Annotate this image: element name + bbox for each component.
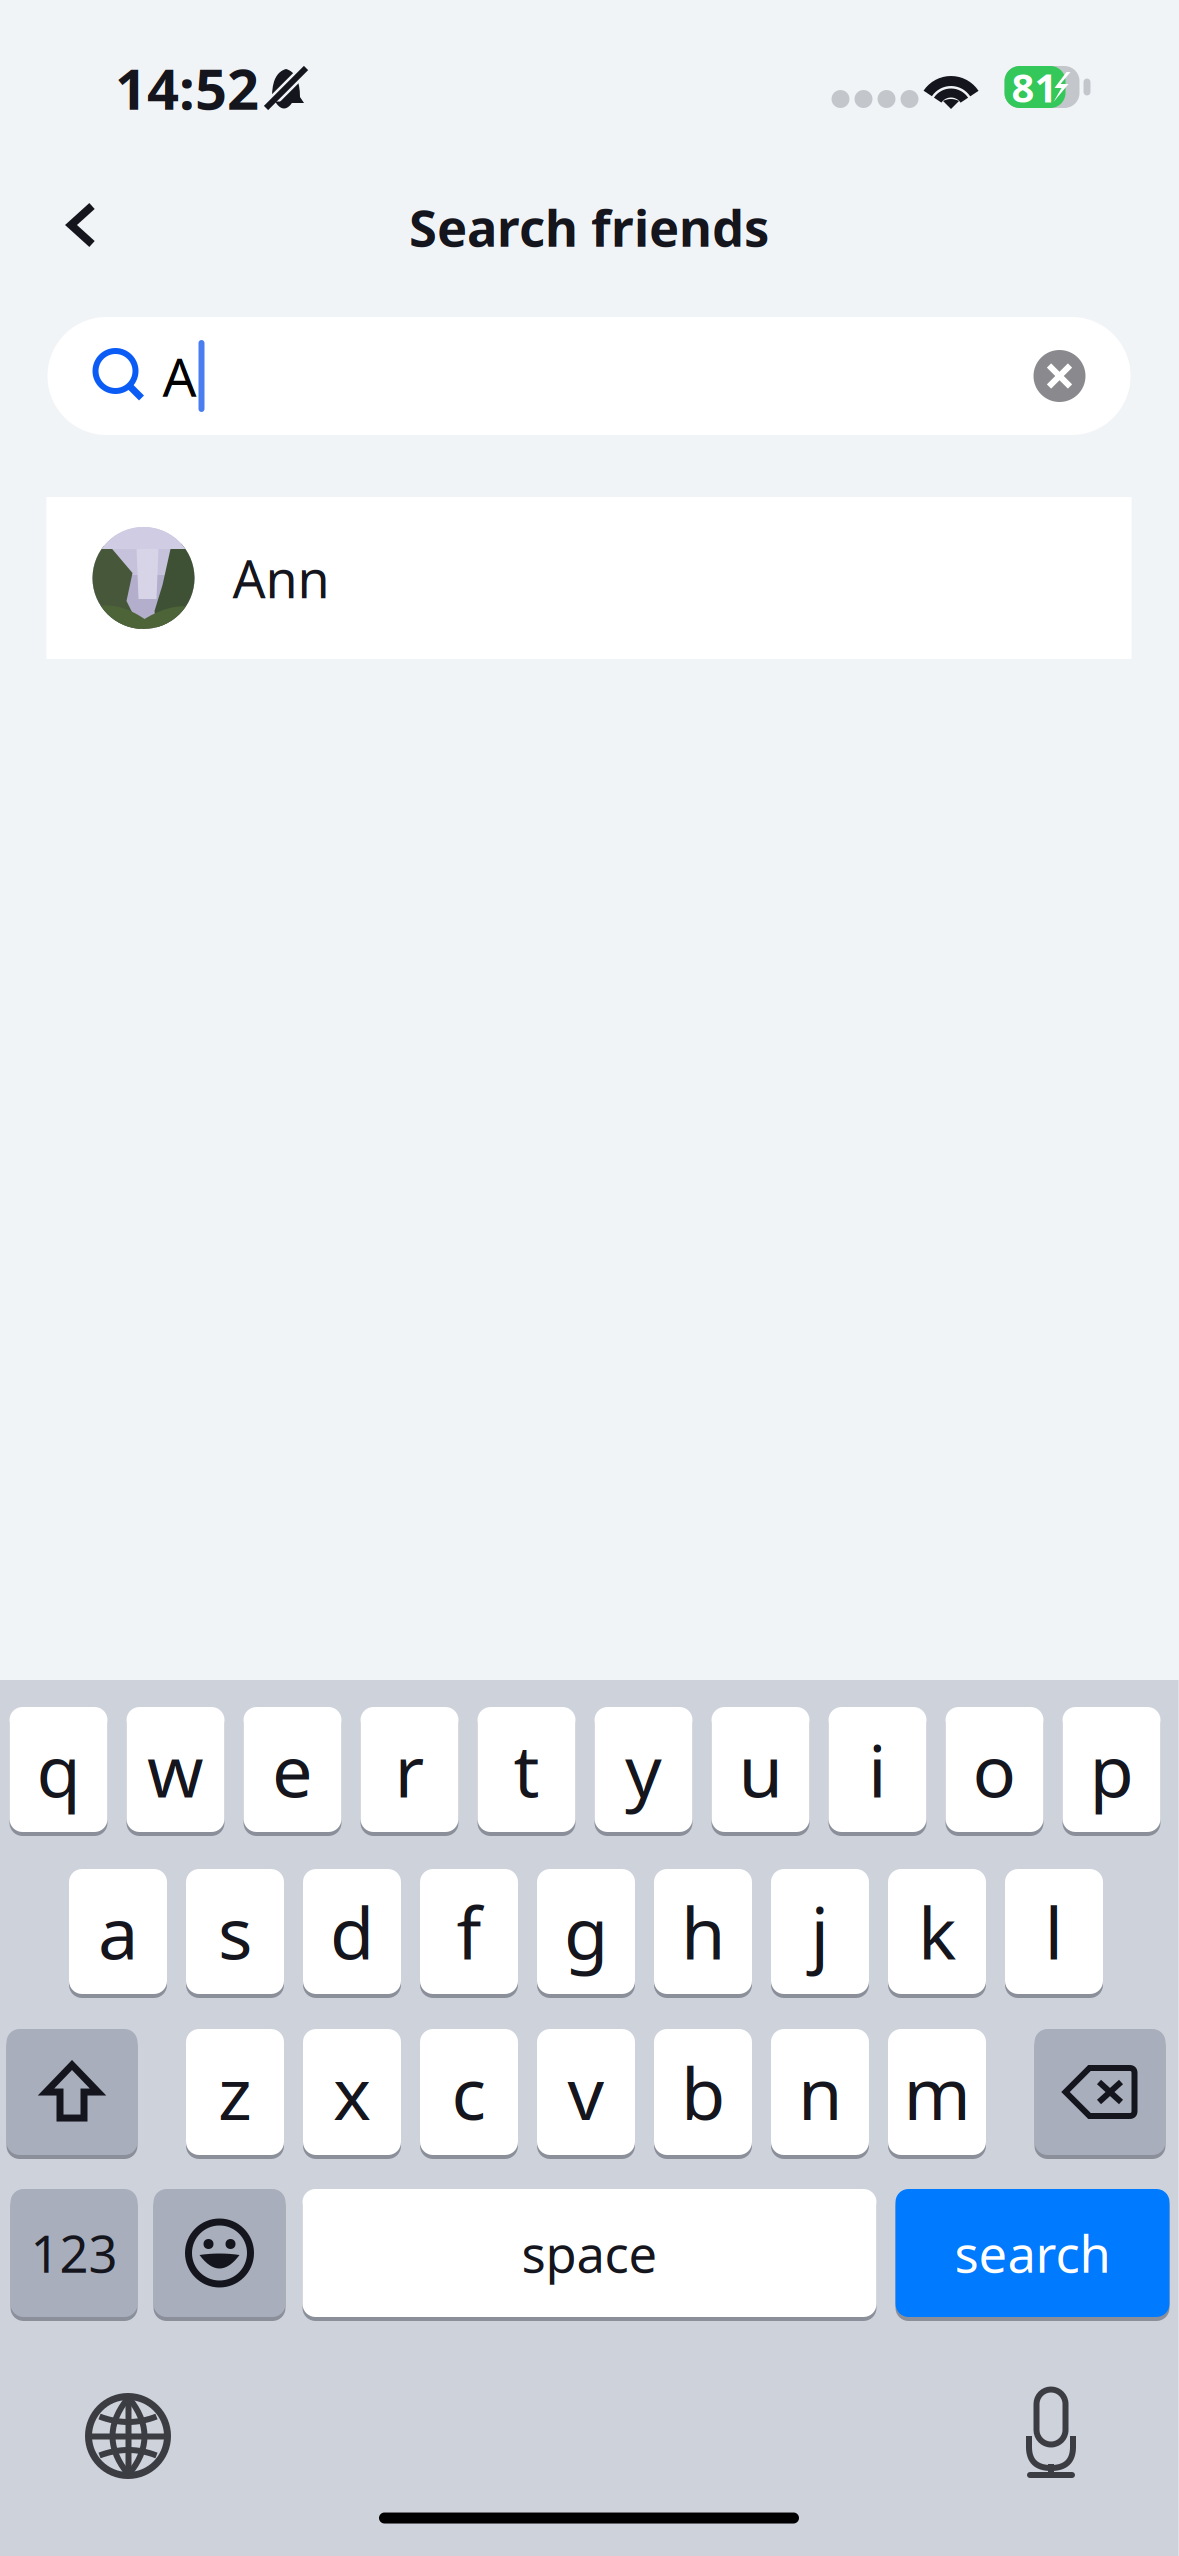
staticText: v <box>567 2044 604 2140</box>
button[interactable]: b <box>654 2027 752 2157</box>
staticText: e <box>272 1722 313 1817</box>
button[interactable]: y <box>594 1705 692 1834</box>
button[interactable]: n <box>771 2027 869 2157</box>
button[interactable]: h <box>654 1867 752 1996</box>
staticText: 81 <box>1011 60 1057 113</box>
staticText: Search friends <box>409 193 769 261</box>
button[interactable]: A <box>47 317 1130 435</box>
staticText: j <box>810 1884 829 1979</box>
staticText: p <box>1089 1722 1133 1817</box>
staticText: f <box>456 1884 481 1979</box>
button[interactable]: Shift <box>6 2027 137 2157</box>
staticText: x <box>333 2044 371 2140</box>
staticText: z <box>218 2044 252 2140</box>
button[interactable]: d <box>303 1867 401 1996</box>
button[interactable]: u <box>711 1705 809 1834</box>
staticText: r <box>394 1722 424 1817</box>
staticText: 14:52 <box>115 51 259 125</box>
button[interactable]: m <box>888 2027 986 2157</box>
button[interactable]: 123 <box>10 2187 137 2319</box>
button[interactable]: l <box>1005 1867 1103 1996</box>
staticText: l <box>1044 1884 1063 1979</box>
button[interactable]: z <box>186 2027 284 2157</box>
staticText: g <box>564 1884 608 1979</box>
button[interactable]: a <box>69 1867 167 1996</box>
button[interactable]: x <box>303 2027 401 2157</box>
button[interactable]: c <box>420 2027 518 2157</box>
staticText: k <box>918 1884 956 1979</box>
staticText: d <box>330 1884 374 1979</box>
button[interactable]: Back <box>34 172 130 280</box>
button[interactable]: Emoji <box>153 2187 285 2319</box>
button[interactable]: k <box>888 1867 986 1996</box>
button[interactable]: space <box>302 2187 876 2319</box>
button[interactable]: e <box>243 1705 341 1834</box>
staticText: n <box>798 2044 842 2140</box>
staticText: o <box>972 1722 1016 1817</box>
staticText: h <box>681 1884 725 1979</box>
button[interactable]: i <box>828 1705 926 1834</box>
staticText: search <box>954 2219 1110 2287</box>
button[interactable]: v <box>537 2027 635 2157</box>
button[interactable]: p <box>1062 1705 1160 1834</box>
button[interactable]: Ann <box>46 497 1131 659</box>
staticText: u <box>738 1722 782 1817</box>
staticText: i <box>868 1722 887 1817</box>
staticText: b <box>681 2044 725 2140</box>
staticText: y <box>625 1722 662 1817</box>
staticText: s <box>218 1884 252 1979</box>
button[interactable]: Dictation <box>1023 2389 1079 2477</box>
button[interactable]: g <box>537 1867 635 1996</box>
staticText: m <box>903 2044 970 2140</box>
button[interactable]: w <box>126 1705 224 1834</box>
staticText: A <box>162 341 196 411</box>
button[interactable]: s <box>186 1867 284 1996</box>
staticText: c <box>451 2044 486 2140</box>
button[interactable]: search <box>895 2187 1169 2319</box>
staticText: a <box>98 1884 138 1979</box>
button[interactable]: f <box>420 1867 518 1996</box>
staticText: w <box>147 1722 204 1817</box>
button[interactable]: t <box>477 1705 575 1834</box>
button[interactable]: o <box>945 1705 1043 1834</box>
staticText: 123 <box>30 2219 117 2287</box>
button[interactable]: Delete <box>1034 2027 1165 2157</box>
staticText: t <box>513 1722 539 1817</box>
staticText: Ann <box>232 543 329 613</box>
button[interactable]: Next keyboard <box>88 2396 168 2476</box>
button[interactable]: r <box>360 1705 458 1834</box>
staticText: q <box>36 1722 80 1817</box>
button[interactable]: j <box>771 1867 869 1996</box>
staticText: space <box>521 2219 657 2287</box>
button[interactable]: q <box>9 1705 107 1834</box>
